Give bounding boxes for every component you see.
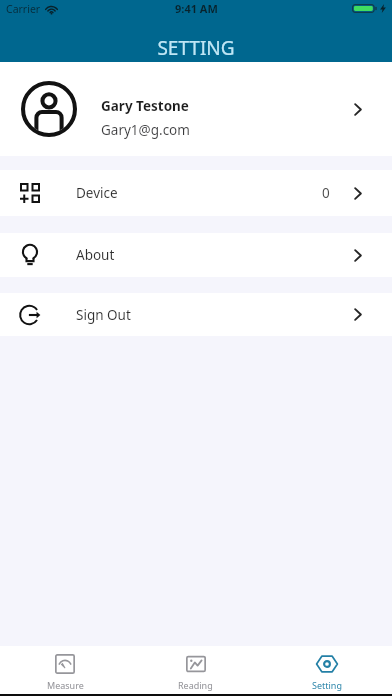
- staticText: Measure: [47, 679, 84, 691]
- staticText: About: [76, 246, 115, 264]
- staticText: Gary Testone: [101, 97, 189, 115]
- staticText: Setting: [312, 679, 342, 691]
- button[interactable]: Device: [0, 170, 392, 216]
- staticText: Device: [76, 184, 118, 202]
- button[interactable]: Sign Out: [0, 293, 392, 336]
- button[interactable]: Reading: [130, 646, 261, 694]
- button[interactable]: About: [0, 233, 392, 277]
- staticText: SETTING: [0, 35, 392, 61]
- other: Open profile: [354, 103, 362, 116]
- button[interactable]: Setting: [261, 646, 392, 694]
- staticText: Reading: [178, 679, 213, 691]
- staticText: Sign Out: [76, 306, 131, 324]
- button[interactable]: Gary Testone: [0, 62, 392, 156]
- staticText: 9:41 AM: [175, 1, 218, 16]
- button[interactable]: Measure: [0, 646, 130, 694]
- staticText: Gary1@g.com: [101, 121, 190, 139]
- staticText: Carrier: [6, 2, 41, 16]
- staticText: 0: [322, 184, 330, 202]
